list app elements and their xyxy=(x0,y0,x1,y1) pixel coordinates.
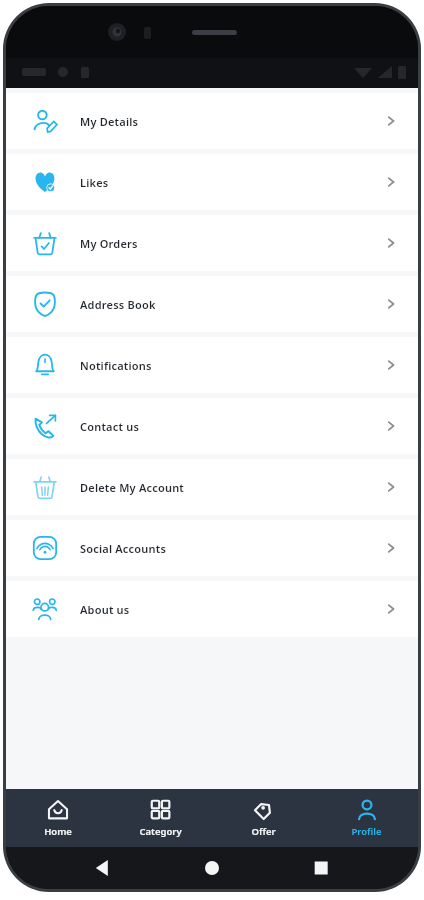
button[interactable]: Likes xyxy=(6,154,418,210)
staticText: Delete My Account xyxy=(80,480,185,495)
button[interactable]: Address Book xyxy=(6,276,418,332)
staticText: Address Book xyxy=(80,297,156,312)
staticText: Home xyxy=(44,825,72,838)
staticText: Social Accounts xyxy=(80,541,167,556)
staticText: Contact us xyxy=(80,419,140,434)
button[interactable]: Profile xyxy=(315,793,418,844)
staticText: Offer xyxy=(251,825,276,838)
button[interactable]: Contact us xyxy=(6,398,418,454)
button[interactable]: Delete My Account xyxy=(6,459,418,515)
button[interactable]: Offer xyxy=(212,793,315,844)
button[interactable]: Home xyxy=(6,793,109,844)
staticText: Likes xyxy=(80,175,109,190)
staticText: Notifications xyxy=(80,358,152,373)
staticText: About us xyxy=(80,602,130,617)
button[interactable]: My Orders xyxy=(6,215,418,271)
button[interactable]: Notifications xyxy=(6,337,418,393)
staticText: Profile xyxy=(351,825,382,838)
staticText: My Details xyxy=(80,114,139,129)
staticText: Category xyxy=(139,825,182,838)
button[interactable]: About us xyxy=(6,581,418,637)
button[interactable]: Category xyxy=(109,793,212,844)
staticText: My Orders xyxy=(80,236,138,251)
button[interactable]: Social Accounts xyxy=(6,520,418,576)
button[interactable]: My Details xyxy=(6,93,418,149)
